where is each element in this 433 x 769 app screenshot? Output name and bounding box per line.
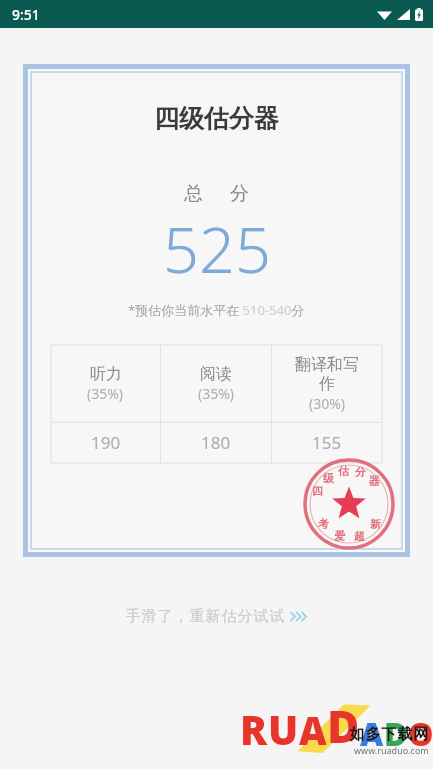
staticText: (30%) <box>309 394 346 413</box>
staticText: U <box>268 702 299 756</box>
staticText: 四级估分器 <box>154 103 279 134</box>
staticText: *预估你当前水平在 510-540分 <box>128 301 305 319</box>
button[interactable]: 手滑了，重新估分试试 <box>0 599 433 634</box>
button[interactable]: 阅读 <box>161 345 271 463</box>
staticText: 分 <box>355 465 366 479</box>
staticText: (35%) <box>87 384 124 403</box>
staticText: 新 <box>370 517 381 531</box>
staticText: 超 <box>354 529 365 543</box>
staticText: 估 <box>338 464 349 478</box>
staticText: 155 <box>312 431 342 454</box>
staticText: A <box>299 704 327 756</box>
staticText: D <box>327 696 360 756</box>
staticText: 如多下载网 <box>349 725 429 744</box>
staticText: 四 <box>312 484 323 498</box>
staticText: 器 <box>369 474 380 488</box>
staticText: 爱 <box>334 529 345 543</box>
staticText: 手滑了，重新估分试试 <box>125 607 285 626</box>
staticText: 180 <box>201 431 231 454</box>
staticText: 总 分 <box>182 180 251 206</box>
staticText: 9:51 <box>12 5 40 24</box>
staticText: A <box>360 712 384 756</box>
other: Official seal <box>303 458 395 550</box>
staticText: R <box>240 702 268 756</box>
staticText: 190 <box>91 431 121 454</box>
staticText: www.ruaduo.com <box>354 744 429 756</box>
staticText: 阅读 <box>200 364 232 384</box>
button[interactable]: 翻译和写 作 <box>272 345 382 463</box>
staticText: 听力 <box>90 364 122 384</box>
staticText: O <box>408 712 432 756</box>
staticText: 级 <box>323 471 334 485</box>
staticText: (35%) <box>198 384 235 403</box>
staticText: 525 <box>163 206 271 292</box>
staticText: 翻译和写 作 <box>295 355 359 394</box>
staticText: 考 <box>318 517 329 531</box>
staticText: D <box>384 712 408 756</box>
button[interactable]: 听力 <box>51 345 160 463</box>
